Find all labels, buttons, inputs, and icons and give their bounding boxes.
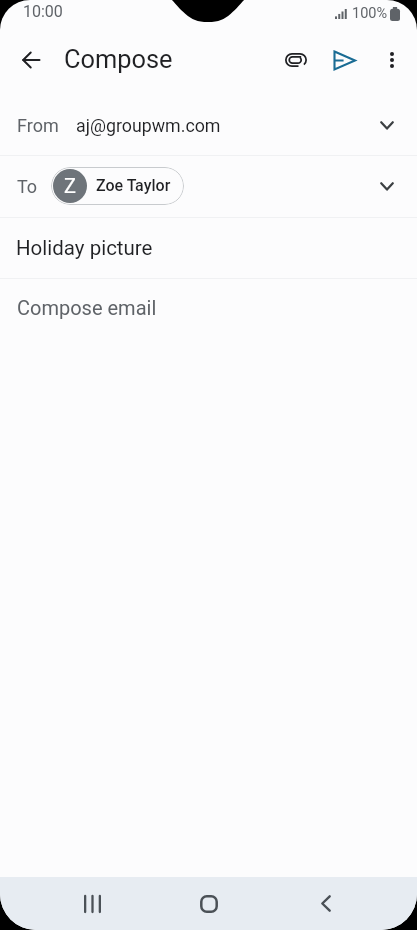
button[interactable]: From <box>0 94 417 155</box>
staticText: 100% <box>352 5 388 22</box>
button[interactable]: Back <box>286 877 366 930</box>
button[interactable]: Back <box>7 36 55 84</box>
button[interactable]: Expand <box>365 103 409 147</box>
button[interactable]: Expand <box>365 164 409 208</box>
button[interactable]: More options <box>368 36 416 84</box>
staticText: Holiday picture <box>16 236 153 260</box>
staticText: From <box>17 115 59 136</box>
button[interactable]: Z <box>51 167 184 205</box>
button[interactable]: To <box>0 155 417 217</box>
staticText: To <box>17 176 38 197</box>
staticText: aj@groupwm.com <box>76 115 221 136</box>
button[interactable]: Holiday picture <box>0 217 417 279</box>
staticText: Zoe Taylor <box>96 176 171 195</box>
staticText: Compose email <box>17 296 157 319</box>
button[interactable]: Send <box>320 36 368 84</box>
button[interactable]: Home <box>169 877 249 930</box>
staticText: Compose <box>64 44 173 74</box>
staticText: 10:00 <box>23 2 63 21</box>
button[interactable]: Attach file <box>272 36 320 84</box>
button[interactable]: Recents <box>52 877 132 930</box>
staticText: Z <box>64 174 76 197</box>
button[interactable]: Compose email <box>0 278 417 338</box>
